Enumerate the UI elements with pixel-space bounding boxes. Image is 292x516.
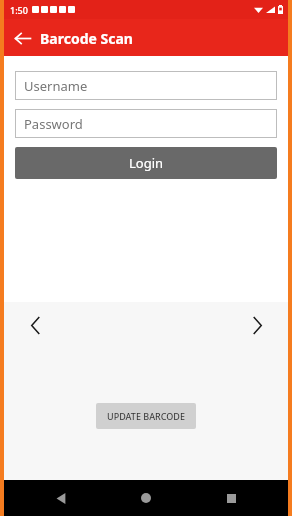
- button[interactable]: Home: [133, 485, 159, 511]
- button[interactable]: Recent apps: [218, 485, 244, 511]
- staticText: UPDATE BARCODE: [107, 410, 185, 422]
- button[interactable]: UPDATE BARCODE: [96, 403, 196, 429]
- button[interactable]: Back: [48, 485, 74, 511]
- button[interactable]: Username: [15, 71, 277, 100]
- staticText: Barcode Scan: [40, 29, 133, 48]
- staticText: 1:50: [10, 4, 28, 16]
- button[interactable]: Back: [4, 20, 40, 56]
- staticText: Password: [24, 115, 83, 133]
- button[interactable]: Login: [15, 147, 277, 179]
- staticText: Username: [24, 77, 88, 95]
- button[interactable]: Previous: [20, 310, 50, 340]
- staticText: Login: [129, 154, 164, 172]
- button[interactable]: Next: [242, 310, 272, 340]
- button[interactable]: Password: [15, 109, 277, 138]
